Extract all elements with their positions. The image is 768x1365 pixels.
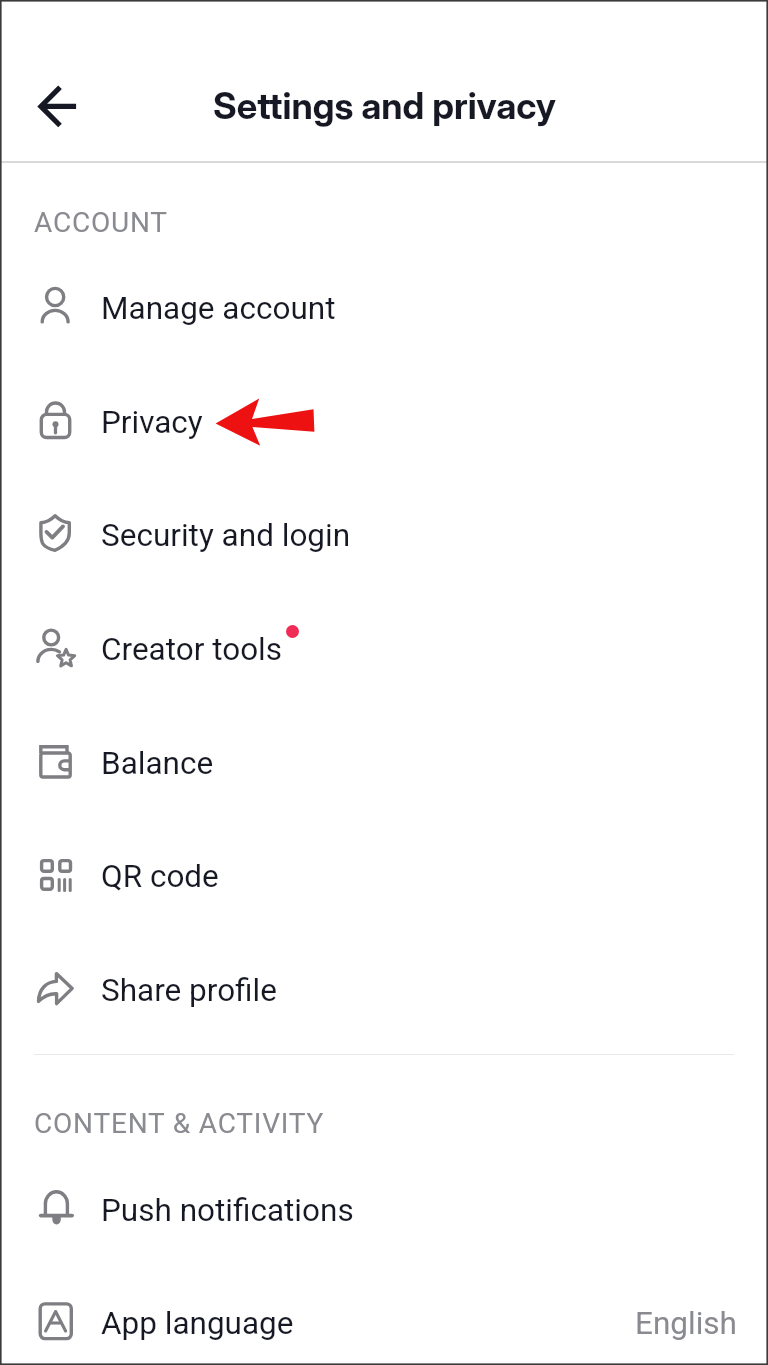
button[interactable]: QR code xyxy=(0,820,768,932)
staticText: Privacy xyxy=(101,404,203,441)
button[interactable]: Back xyxy=(21,70,93,142)
staticText: ACCOUNT xyxy=(34,206,168,239)
staticText: Balance xyxy=(101,745,214,782)
staticText: QR code xyxy=(101,858,219,895)
staticText: App language xyxy=(101,1305,294,1342)
staticText: Push notifications xyxy=(101,1192,354,1229)
button[interactable]: Balance xyxy=(0,707,768,819)
button[interactable]: Push notifications xyxy=(0,1154,768,1266)
staticText: Manage account xyxy=(101,290,336,327)
staticText: CONTENT & ACTIVITY xyxy=(34,1107,325,1140)
staticText: Creator tools xyxy=(101,631,283,668)
button[interactable]: App language xyxy=(0,1267,768,1365)
button[interactable]: Share profile xyxy=(0,934,768,1046)
button[interactable]: Manage account xyxy=(0,252,768,364)
staticText: Share profile xyxy=(101,972,277,1009)
staticText: Settings and privacy xyxy=(213,84,556,128)
button[interactable]: Privacy xyxy=(0,366,768,478)
button[interactable]: Security and login xyxy=(0,479,768,591)
button[interactable]: Creator tools xyxy=(0,593,768,705)
staticText: Security and login xyxy=(101,517,351,554)
staticText: English xyxy=(635,1305,737,1342)
